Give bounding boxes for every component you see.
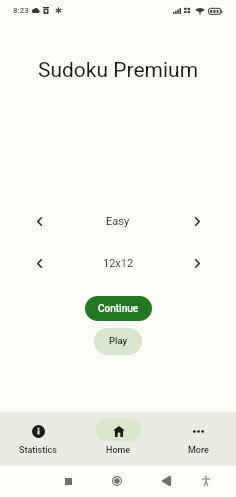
button[interactable]: Accessibility (194, 469, 218, 493)
button[interactable]: Next Easy (185, 210, 209, 233)
staticText: Statistics (19, 445, 57, 456)
staticText: 12x12 (103, 257, 134, 270)
staticText: Play (109, 335, 128, 346)
button[interactable]: Back (154, 469, 178, 493)
staticText: Easy (106, 215, 130, 228)
button[interactable]: Statistics (5, 412, 71, 466)
staticText: 8:23 (13, 6, 29, 15)
button[interactable]: Previous 12x12 (27, 252, 51, 275)
button[interactable]: Home (85, 412, 151, 466)
staticText: Continue (98, 303, 139, 315)
button[interactable]: More (165, 412, 231, 466)
staticText: Sudoku Premium (0, 58, 236, 83)
button[interactable]: Home (105, 469, 129, 493)
button[interactable]: Previous Easy (27, 210, 51, 233)
button[interactable]: Next 12x12 (185, 252, 209, 275)
button[interactable]: Recent apps (56, 469, 80, 493)
staticText: More (188, 445, 209, 456)
button[interactable]: Continue (85, 296, 152, 321)
button[interactable]: Play (94, 328, 142, 355)
staticText: Home (106, 445, 131, 456)
